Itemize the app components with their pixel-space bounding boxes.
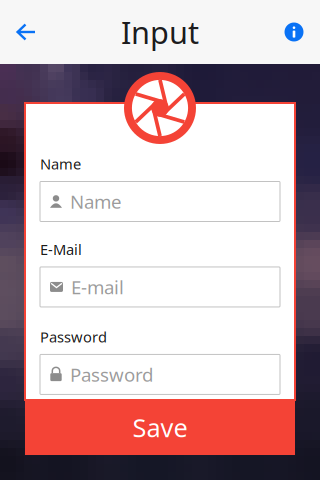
button[interactable]: Information: [272, 10, 316, 54]
staticText: Password: [40, 327, 107, 346]
button[interactable]: E-mail: [40, 267, 280, 307]
button[interactable]: Back: [4, 10, 48, 54]
button[interactable]: Save: [25, 400, 295, 455]
staticText: Input: [121, 12, 199, 52]
staticText: Password: [70, 362, 153, 387]
staticText: E-Mail: [40, 239, 82, 259]
staticText: Save: [132, 411, 187, 444]
staticText: E-mail: [71, 275, 124, 299]
button[interactable]: Name: [40, 181, 280, 221]
staticText: Name: [70, 189, 122, 214]
staticText: Name: [40, 154, 81, 173]
button[interactable]: Password: [40, 354, 280, 394]
